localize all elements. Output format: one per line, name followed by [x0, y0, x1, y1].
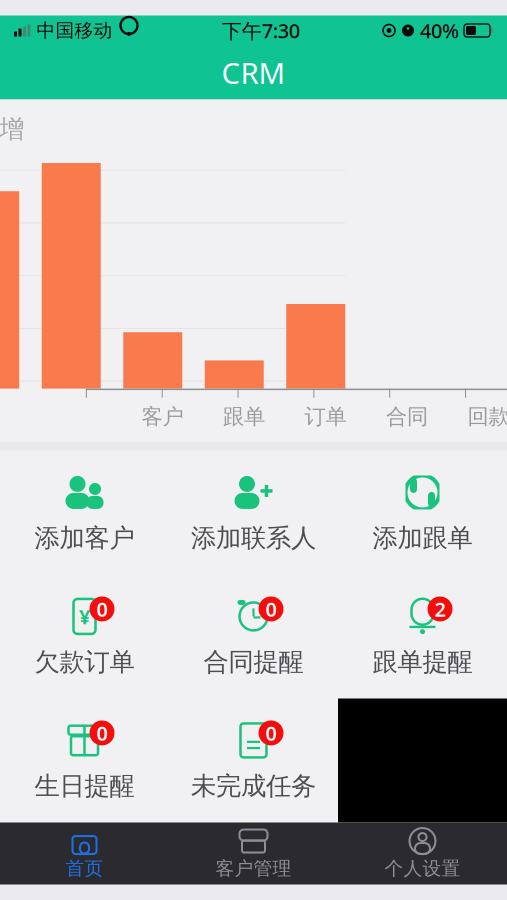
staticText: 本月新增 — [0, 113, 24, 145]
button[interactable]: 首页 — [0, 822, 169, 884]
button[interactable]: 客户管理 — [169, 822, 338, 884]
staticText: 回款 — [467, 404, 507, 430]
staticText: 添加跟单 — [372, 522, 472, 553]
staticText: 0 — [96, 596, 107, 622]
staticText: 0 — [96, 720, 107, 746]
staticText: 客户 — [141, 404, 183, 430]
staticText: 添加客户 — [34, 522, 134, 553]
staticText: 中国移动 — [36, 19, 112, 42]
staticText: 下午7:30 — [222, 17, 300, 44]
button[interactable]: 添加客户 — [0, 450, 169, 574]
staticText: ¥ — [79, 603, 90, 630]
button[interactable]: 添加跟单 — [338, 450, 507, 574]
staticText: 40% — [420, 17, 459, 44]
button[interactable]: 0 — [169, 698, 338, 822]
button[interactable]: 2 — [338, 574, 507, 698]
button[interactable]: CRM — [0, 45, 507, 99]
staticText: 客户管理 — [215, 857, 291, 880]
staticText: 跟单提醒 — [372, 646, 472, 677]
staticText: 未完成任务 — [191, 770, 316, 801]
staticText: 订单 — [304, 404, 346, 430]
button[interactable]: 0 — [169, 574, 338, 698]
button[interactable]: 个人设置 — [338, 822, 507, 884]
staticText: 合同 — [386, 404, 428, 430]
staticText: 合同提醒 — [203, 646, 303, 677]
staticText: 0 — [265, 596, 276, 622]
button[interactable]: 0 — [0, 698, 169, 822]
staticText: 欠款订单 — [34, 646, 134, 677]
staticText: 首页 — [65, 857, 103, 880]
staticText: 个人设置 — [384, 857, 460, 880]
button[interactable]: ¥ — [0, 574, 169, 698]
staticText: CRM — [221, 53, 285, 92]
staticText: 2 — [434, 596, 445, 622]
staticText: 生日提醒 — [34, 770, 134, 801]
staticText: 跟单 — [223, 404, 265, 430]
staticText: 0 — [265, 720, 276, 746]
staticText: 添加联系人 — [191, 522, 316, 553]
button[interactable]: 添加联系人 — [169, 450, 338, 574]
